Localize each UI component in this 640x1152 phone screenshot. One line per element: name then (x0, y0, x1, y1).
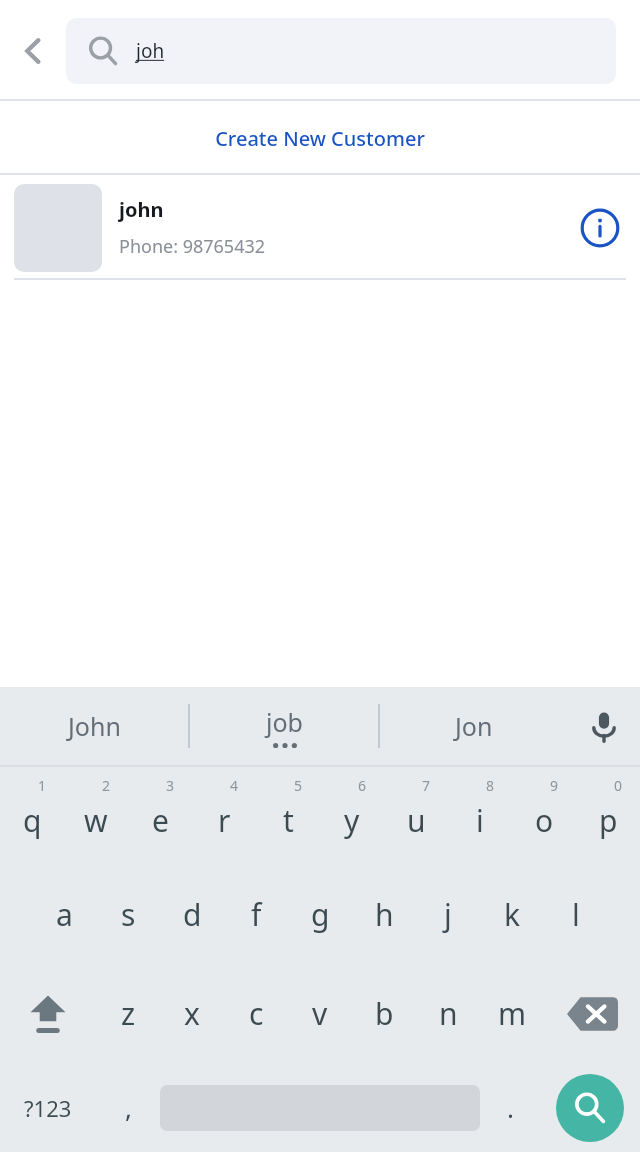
staticText: k (504, 894, 521, 935)
button[interactable]: h (352, 865, 416, 964)
staticText: u (407, 800, 426, 841)
button[interactable]: ?123 (0, 1063, 96, 1152)
button[interactable]: f (224, 865, 288, 964)
staticText: g (311, 894, 330, 935)
staticText: i (476, 800, 484, 841)
button[interactable]: 7 (384, 767, 448, 865)
staticText: 1 (38, 776, 47, 795)
staticText: . (507, 1090, 514, 1125)
staticText: s (121, 894, 136, 935)
staticText: p (599, 800, 618, 841)
button[interactable]: 4 (192, 767, 256, 865)
staticText: 6 (358, 776, 367, 795)
staticText: 5 (294, 776, 303, 795)
staticText: Create New Customer (215, 125, 425, 152)
staticText: e (152, 800, 169, 841)
staticText: job (266, 705, 303, 739)
staticText: l (572, 894, 580, 935)
button[interactable]: b (352, 964, 416, 1063)
button[interactable]: Create New Customer (0, 101, 640, 175)
staticText: 2 (102, 776, 111, 795)
staticText: john (119, 196, 164, 223)
button[interactable]: 0 (576, 767, 640, 865)
button[interactable]: j (416, 865, 480, 964)
button[interactable]: v (288, 964, 352, 1063)
button[interactable]: c (224, 964, 288, 1063)
button[interactable]: g (288, 865, 352, 964)
staticText: 4 (230, 776, 239, 795)
staticText: , (125, 1090, 132, 1125)
button[interactable]: l (544, 865, 608, 964)
staticText: t (283, 800, 294, 841)
button[interactable]: joh (66, 18, 616, 84)
button[interactable]: Backspace (544, 964, 640, 1063)
staticText: q (23, 800, 42, 841)
button[interactable]: 8 (448, 767, 512, 865)
staticText: c (249, 993, 264, 1034)
button[interactable]: , (96, 1063, 160, 1152)
button[interactable]: . (480, 1063, 540, 1152)
button[interactable]: d (160, 865, 224, 964)
button[interactable]: n (416, 964, 480, 1063)
staticText: x (184, 993, 200, 1034)
staticText: 0 (614, 776, 623, 795)
staticText: o (535, 800, 554, 841)
button[interactable]: job (266, 687, 303, 765)
button[interactable]: john (0, 175, 640, 280)
button[interactable]: 2 (64, 767, 128, 865)
button[interactable]: k (480, 865, 544, 964)
staticText: v (312, 993, 328, 1034)
staticText: f (251, 894, 262, 935)
staticText: 8 (486, 776, 495, 795)
staticText: 9 (550, 776, 559, 795)
staticText: a (56, 894, 73, 935)
staticText: joh (136, 38, 165, 64)
button[interactable]: s (96, 865, 160, 964)
staticText: h (375, 894, 394, 935)
staticText: w (84, 800, 108, 841)
button[interactable]: Voice input (568, 687, 640, 765)
button[interactable]: 3 (128, 767, 192, 865)
button[interactable]: Back (0, 0, 66, 101)
button[interactable]: Search (540, 1063, 640, 1152)
button[interactable]: Shift (0, 964, 96, 1063)
staticText: Phone: 98765432 (119, 234, 266, 259)
staticText: z (121, 993, 136, 1034)
button[interactable]: Jon (380, 687, 568, 765)
button[interactable]: z (96, 964, 160, 1063)
button[interactable]: 9 (512, 767, 576, 865)
staticText: r (218, 800, 231, 841)
staticText: ?123 (24, 1093, 72, 1123)
staticText: b (375, 993, 394, 1034)
button[interactable] (160, 1063, 480, 1152)
button[interactable]: x (160, 964, 224, 1063)
button[interactable]: 6 (320, 767, 384, 865)
staticText: n (439, 993, 458, 1034)
staticText: j (444, 894, 452, 935)
button[interactable]: m (480, 964, 544, 1063)
staticText: y (344, 800, 360, 841)
staticText: John (68, 709, 121, 743)
button[interactable]: John (0, 687, 188, 765)
staticText: Jon (455, 709, 493, 743)
staticText: d (183, 894, 202, 935)
staticText: 7 (422, 776, 431, 795)
button[interactable]: Customer info (574, 202, 626, 254)
button[interactable]: 5 (256, 767, 320, 865)
button[interactable]: a (32, 865, 96, 964)
button[interactable]: 1 (0, 767, 64, 865)
staticText: m (498, 993, 527, 1034)
staticText: 3 (166, 776, 175, 795)
